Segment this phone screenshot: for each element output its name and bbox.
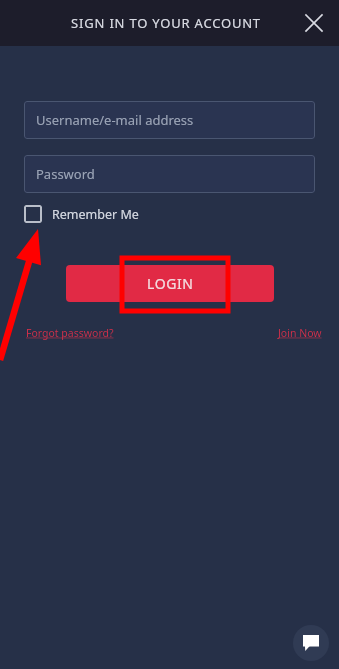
button[interactable]: Open chat (293, 625, 329, 661)
staticText: LOGIN (147, 274, 194, 293)
staticText: Remember Me (52, 206, 139, 223)
button[interactable]: Username/e-mail address (24, 101, 315, 139)
staticText: Join Now (278, 326, 322, 340)
button[interactable]: Remember Me (24, 205, 139, 223)
button[interactable]: Password (24, 155, 315, 193)
button[interactable]: Forgot password? (26, 326, 114, 340)
staticText: Password (36, 165, 95, 183)
staticText: Forgot password? (26, 326, 114, 340)
button[interactable]: Join Now (278, 326, 322, 340)
staticText: Username/e-mail address (36, 111, 194, 129)
button[interactable]: Close (297, 6, 331, 40)
button[interactable]: LOGIN (66, 265, 274, 302)
staticText: SIGN IN TO YOUR ACCOUNT (71, 14, 261, 32)
